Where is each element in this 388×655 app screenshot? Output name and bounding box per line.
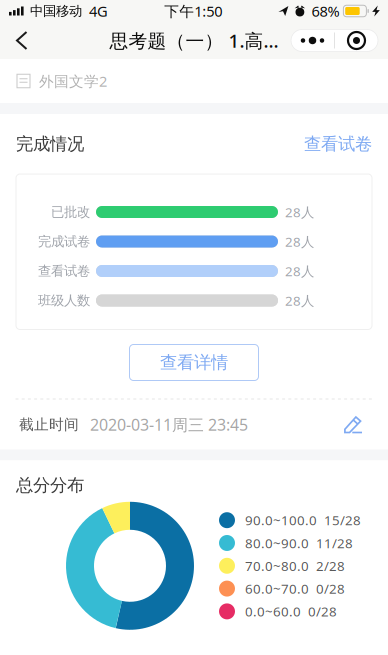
staticText: 下午1:50 bbox=[164, 1, 222, 21]
staticText: 思考题（一） 1.高… bbox=[109, 28, 278, 53]
staticText: 截止时间 bbox=[19, 415, 79, 433]
staticText: 28人 bbox=[285, 233, 314, 250]
staticText: 查看详情 bbox=[160, 352, 228, 373]
staticText: 中国移动 bbox=[30, 3, 82, 19]
staticText: 68% bbox=[311, 1, 339, 21]
staticText: 外国文学2 bbox=[39, 71, 107, 91]
staticText: 0.0~60.0 bbox=[245, 602, 301, 620]
staticText: 查看试卷 bbox=[304, 133, 372, 155]
staticText: 70.0~80.0 bbox=[245, 557, 309, 575]
button[interactable]: Edit deadline bbox=[344, 416, 362, 433]
staticText: 总分分布 bbox=[16, 474, 84, 496]
button[interactable]: 查看详情 bbox=[129, 344, 258, 380]
staticText: 28人 bbox=[285, 203, 314, 221]
staticText: 4G bbox=[89, 1, 108, 21]
staticText: 90.0~100.0 bbox=[245, 511, 317, 529]
button[interactable]: Back bbox=[0, 23, 44, 58]
button[interactable]: More options bbox=[291, 29, 334, 51]
staticText: 15/28 bbox=[324, 511, 361, 529]
staticText: 完成情况 bbox=[16, 133, 84, 155]
staticText: 2/28 bbox=[316, 557, 345, 575]
staticText: 11/28 bbox=[316, 534, 353, 552]
staticText: 60.0~70.0 bbox=[245, 580, 309, 597]
button[interactable]: Close mini program bbox=[335, 29, 378, 51]
staticText: 查看试卷 bbox=[38, 263, 90, 279]
staticText: 0/28 bbox=[308, 602, 337, 620]
staticText: 2020-03-11周三 23:45 bbox=[90, 414, 248, 435]
staticText: 完成试卷 bbox=[38, 233, 90, 250]
staticText: 已批改 bbox=[51, 204, 90, 220]
staticText: 28人 bbox=[285, 292, 314, 309]
staticText: 班级人数 bbox=[38, 292, 90, 309]
button[interactable]: 查看试卷 bbox=[304, 133, 372, 155]
staticText: 28人 bbox=[285, 262, 314, 280]
staticText: 0/28 bbox=[316, 580, 345, 597]
staticText: 80.0~90.0 bbox=[245, 534, 309, 552]
